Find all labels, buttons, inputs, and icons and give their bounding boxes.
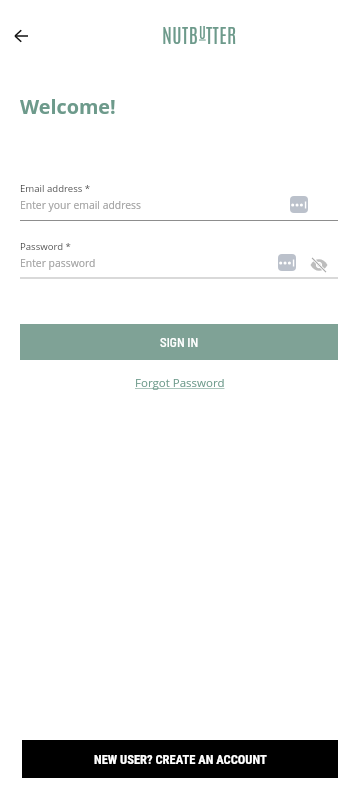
button[interactable]: NEW USER? CREATE AN ACCOUNT xyxy=(22,740,338,778)
staticText: Enter password xyxy=(20,256,96,270)
button[interactable]: SIGN IN xyxy=(20,324,338,360)
staticText: NEW USER? CREATE AN ACCOUNT xyxy=(94,752,267,767)
staticText: Email address * xyxy=(20,182,91,195)
staticText: SIGN IN xyxy=(160,334,199,350)
staticText: Forgot Password xyxy=(135,375,225,391)
staticText: TTER xyxy=(206,21,237,47)
staticText: U xyxy=(199,22,206,41)
button[interactable]: Autofill xyxy=(290,196,308,213)
staticText: NUTB xyxy=(162,21,199,47)
button[interactable]: Back xyxy=(5,19,38,52)
button[interactable]: Autofill xyxy=(278,254,296,271)
button[interactable]: Show password xyxy=(309,255,329,275)
staticText: Enter your email address xyxy=(20,198,141,212)
staticText: Welcome! xyxy=(20,93,116,120)
button[interactable]: Forgot Password xyxy=(135,375,225,391)
staticText: Password * xyxy=(20,240,71,253)
